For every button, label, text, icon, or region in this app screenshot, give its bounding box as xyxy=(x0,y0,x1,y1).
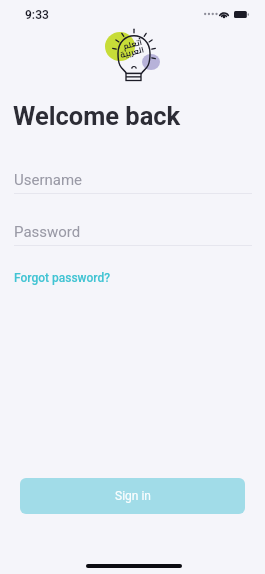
staticText: Sign in xyxy=(115,489,151,503)
staticText: Username xyxy=(14,171,83,189)
button[interactable]: Password xyxy=(0,223,265,253)
button[interactable]: Username xyxy=(0,171,265,201)
staticText: العربية xyxy=(119,42,146,63)
button[interactable]: Forgot password? xyxy=(14,271,111,285)
staticText: Welcome back xyxy=(13,101,181,131)
button[interactable]: Sign in xyxy=(20,478,245,514)
staticText: 9:33 xyxy=(25,8,49,22)
staticText: Password xyxy=(14,223,81,241)
staticText: Forgot password? xyxy=(14,271,111,285)
staticText: أتعلم xyxy=(121,35,144,54)
